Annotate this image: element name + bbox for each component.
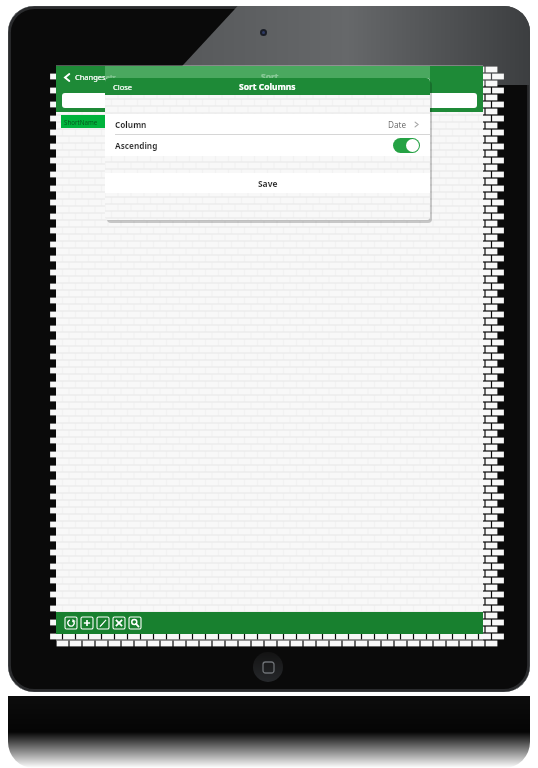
button[interactable]: Ascending (105, 135, 430, 156)
staticText: ShortName (64, 118, 98, 126)
staticText: Column (115, 119, 147, 130)
button[interactable]: Add (79, 615, 95, 631)
button[interactable]: Edit (95, 615, 111, 631)
staticText: Sort (261, 71, 279, 83)
button[interactable]: Column (105, 114, 430, 134)
button[interactable]: Close (105, 79, 141, 95)
button[interactable]: Refresh (63, 615, 79, 631)
button[interactable]: ShortName (61, 115, 113, 128)
staticText: Close (113, 82, 133, 92)
button[interactable] (62, 93, 477, 108)
staticText: Save (258, 178, 278, 189)
button[interactable]: Delete (111, 615, 127, 631)
button[interactable]: Search (127, 615, 143, 631)
button[interactable]: Changesets (61, 70, 119, 84)
staticText: Changesets (75, 72, 117, 82)
button[interactable]: Ascending toggle (393, 138, 420, 153)
staticText: Date (388, 119, 407, 130)
button[interactable]: Save (105, 173, 430, 193)
staticText: Sort Columns (239, 81, 296, 93)
staticText: Ascending (115, 140, 158, 151)
